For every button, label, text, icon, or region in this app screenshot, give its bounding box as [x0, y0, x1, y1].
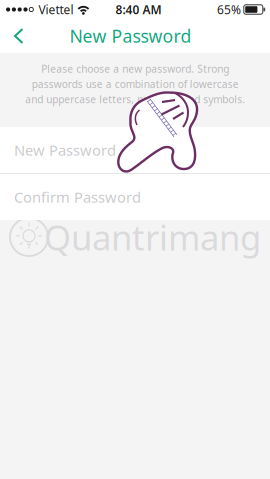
staticText: Viettel [38, 1, 73, 17]
staticText: Quantrimang [44, 214, 261, 260]
staticText: New Password [69, 24, 191, 48]
staticText: Confirm Password [14, 187, 141, 207]
staticText: Please choose a new password. Strong pas… [25, 62, 245, 106]
button[interactable]: New Password [0, 127, 270, 173]
staticText: 65% [217, 1, 241, 17]
button[interactable]: Confirm Password [0, 174, 270, 220]
button[interactable]: Back [0, 20, 39, 52]
staticText: New Password [14, 140, 116, 160]
staticText: 8:40 AM [115, 1, 161, 17]
